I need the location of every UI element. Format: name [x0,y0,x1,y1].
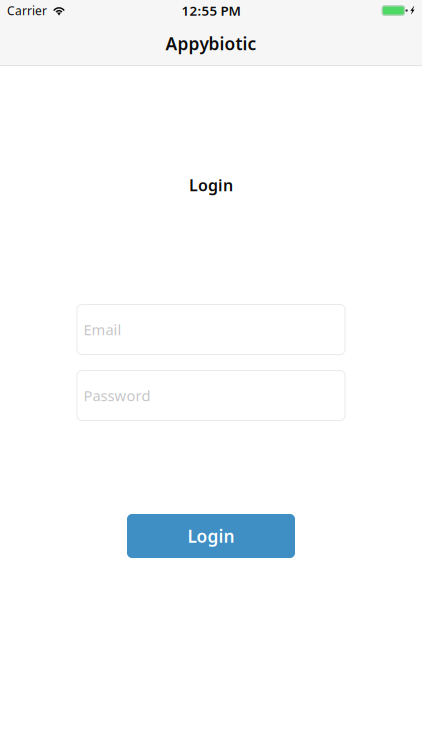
staticText: Login [187,524,234,547]
staticText: 12:55 PM [181,2,240,19]
button[interactable]: Email [76,304,345,355]
staticText: Appybiotic [165,32,256,55]
button[interactable]: Password [76,370,345,421]
button[interactable]: Login [127,514,295,558]
staticText: Carrier [7,2,47,18]
staticText: Password [83,386,150,405]
staticText: Email [83,320,121,339]
staticText: Login [189,174,233,196]
